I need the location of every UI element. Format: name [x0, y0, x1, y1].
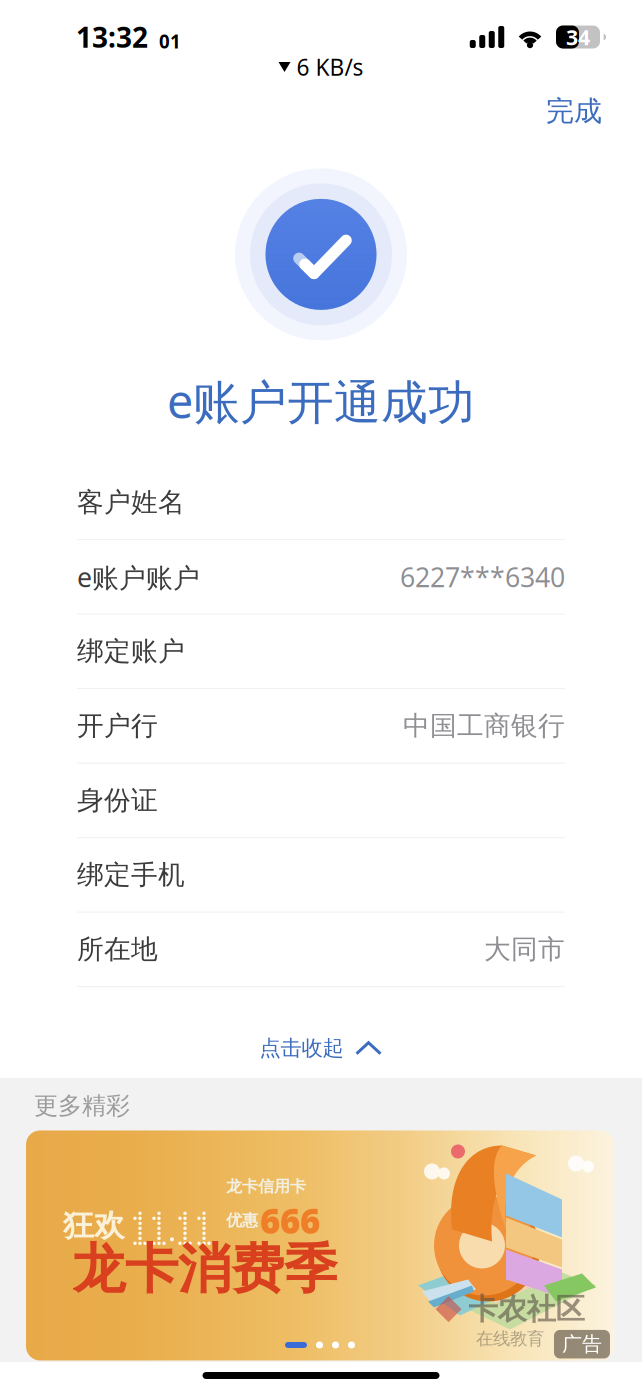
staticText: 开户行 [77, 709, 158, 742]
button[interactable]: 客户姓名 [77, 466, 565, 540]
button[interactable]: 开户行 [77, 689, 565, 764]
button[interactable]: e账户账户 [77, 540, 565, 615]
staticText: 666 [260, 1197, 320, 1243]
staticText: 01 [159, 29, 181, 54]
staticText: 狂欢 [63, 1207, 125, 1244]
staticText: 优惠 [226, 1210, 258, 1230]
staticText: 34 [566, 23, 590, 51]
staticText: 客户姓名 [77, 486, 185, 519]
staticText: 卡农社区 [468, 1291, 584, 1327]
staticText: 广告 [562, 1332, 602, 1356]
staticText: 龙卡信用卡 [226, 1177, 306, 1196]
staticText: 龙卡消费季 [72, 1236, 337, 1302]
button[interactable]: 绑定手机 [77, 838, 565, 913]
staticText: 绑定账户 [77, 635, 185, 668]
button[interactable]: 绑定账户 [77, 615, 565, 689]
staticText: 6227***6340 [400, 559, 565, 594]
staticText: e账户开通成功 [167, 369, 475, 432]
staticText: 13:32 [76, 18, 148, 56]
staticText: 更多精彩 [34, 1091, 130, 1120]
staticText: 6 KB/s [296, 52, 363, 82]
staticText: 点击收起 [259, 1035, 343, 1061]
button[interactable]: 完成 [528, 84, 620, 138]
staticText: 中国工商银行 [403, 709, 565, 742]
staticText: 在线教育 [476, 1328, 544, 1349]
staticText: 身份证 [77, 784, 158, 817]
button[interactable]: 点击收起 [259, 1022, 382, 1074]
staticText: 完成 [546, 94, 602, 128]
staticText: e账户账户 [77, 559, 200, 595]
staticText: 大同市 [484, 933, 565, 966]
button[interactable]: 狂欢 [26, 1130, 614, 1360]
staticText: 所在地 [77, 933, 158, 966]
button[interactable]: 身份证 [77, 764, 565, 838]
staticText: 绑定手机 [77, 858, 185, 891]
button[interactable]: 所在地 [77, 913, 565, 987]
